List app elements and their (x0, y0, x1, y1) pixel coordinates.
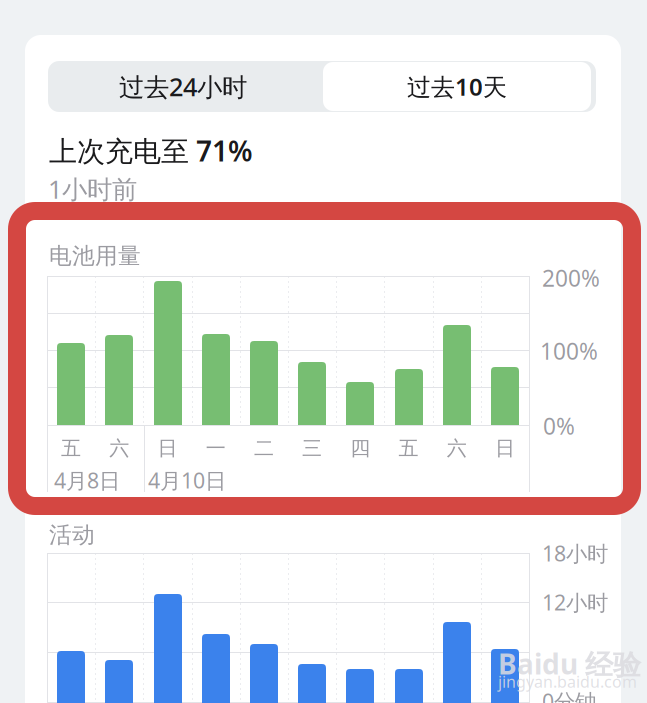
staticText: 上次充电至 71% (49, 132, 253, 169)
staticText: 18小时 (542, 539, 608, 567)
staticText: 电池用量 (49, 242, 141, 270)
staticText: jingyan.baidu.com (498, 671, 637, 692)
staticText: 日 (495, 436, 515, 461)
staticText: 五 (61, 436, 81, 461)
button[interactable]: 过去24小时 (48, 65, 318, 108)
staticText: 二 (254, 436, 274, 461)
button[interactable]: 过去10天 (323, 62, 591, 111)
staticText: 六 (109, 436, 129, 461)
staticText: 4月10日 (148, 466, 226, 494)
staticText: 4月8日 (54, 466, 120, 494)
staticText: 1小时前 (48, 172, 137, 206)
staticText: 过去24小时 (119, 70, 247, 103)
staticText: 活动 (49, 521, 95, 549)
staticText: 200% (542, 263, 600, 293)
staticText: 四 (350, 436, 370, 461)
staticText: 一 (206, 436, 226, 461)
staticText: 三 (302, 436, 322, 461)
staticText: 五 (398, 436, 418, 461)
staticText: 六 (447, 436, 467, 461)
staticText: 日 (157, 436, 177, 461)
staticText: Baidu 经验 (498, 645, 641, 682)
staticText: 100% (540, 336, 598, 366)
staticText: 0% (543, 411, 575, 441)
staticText: 12小时 (542, 588, 608, 616)
staticText: 过去10天 (407, 71, 507, 102)
staticText: 0分钟 (542, 687, 596, 703)
